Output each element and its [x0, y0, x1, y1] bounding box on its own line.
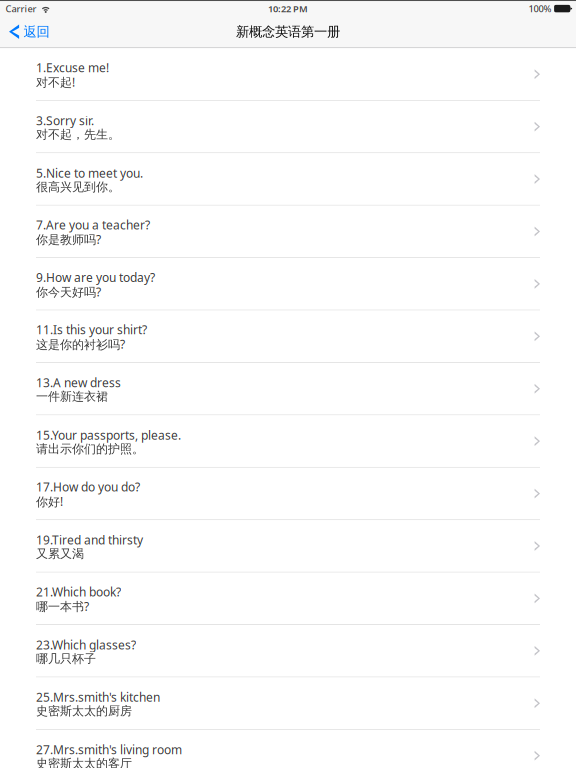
staticText: 1.Excuse me! [36, 60, 109, 75]
staticText: 你今天好吗? [36, 284, 101, 300]
staticText: 你好! [36, 493, 63, 509]
staticText: 11.Is this your shirt? [36, 322, 147, 338]
button[interactable]: 1.Excuse me! [0, 48, 576, 101]
staticText: 一件新连衣裙 [36, 389, 108, 404]
button[interactable]: 21.Which book? [0, 573, 576, 625]
staticText: 5.Nice to meet you. [36, 165, 143, 181]
button[interactable]: 25.Mrs.smith's kitchen [0, 677, 576, 730]
staticText: 23.Which glasses? [36, 637, 136, 653]
staticText: 对不起! [36, 74, 75, 90]
staticText: 7.Are you a teacher? [36, 217, 150, 233]
staticText: 这是你的衬衫吗? [36, 336, 125, 352]
button[interactable]: 13.A new dress [0, 363, 576, 415]
staticText: 很高兴见到你。 [36, 179, 120, 194]
staticText: 100% [528, 2, 551, 15]
button[interactable]: 3.Sorry sir. [0, 101, 576, 153]
staticText: 新概念英语第一册 [236, 23, 340, 40]
staticText: 史密斯太太的客厅 [36, 756, 132, 768]
staticText: 15.Your passports, please. [36, 427, 181, 443]
staticText: 27.Mrs.smith's living room [36, 742, 182, 757]
staticText: 9.How are you today? [36, 269, 155, 285]
staticText: Carrier [6, 2, 37, 15]
staticText: 你是教师吗? [36, 231, 101, 247]
button[interactable]: 15.Your passports, please. [0, 415, 576, 468]
staticText: 请出示你们的护照。 [36, 442, 144, 456]
button[interactable]: 27.Mrs.smith's living room [0, 730, 576, 768]
staticText: 哪几只杯子 [36, 651, 96, 666]
staticText: 对不起，先生。 [36, 127, 120, 142]
staticText: 13.A new dress [36, 375, 121, 391]
button[interactable]: 17.How do you do? [0, 468, 576, 520]
staticText: 25.Mrs.smith's kitchen [36, 689, 160, 705]
button[interactable]: 7.Are you a teacher? [0, 206, 576, 258]
staticText: 19.Tired and thirsty [36, 532, 143, 548]
button[interactable]: 9.How are you today? [0, 258, 576, 310]
staticText: 10:22 PM [268, 2, 308, 15]
button[interactable]: 返回 [0, 19, 60, 44]
button[interactable]: 19.Tired and thirsty [0, 520, 576, 573]
staticText: 3.Sorry sir. [36, 113, 94, 128]
button[interactable]: 11.Is this your shirt? [0, 310, 576, 363]
staticText: 又累又渴 [36, 546, 84, 561]
staticText: 返回 [24, 23, 50, 40]
staticText: 哪一本书? [36, 598, 89, 614]
button[interactable]: 5.Nice to meet you. [0, 153, 576, 206]
button[interactable]: 23.Which glasses? [0, 625, 576, 677]
staticText: 史密斯太太的厨房 [36, 704, 132, 718]
staticText: 17.How do you do? [36, 479, 140, 495]
staticText: 21.Which book? [36, 584, 121, 600]
